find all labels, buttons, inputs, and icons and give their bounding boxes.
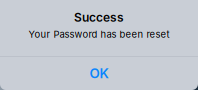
staticText: Your Password has been reset: [28, 28, 169, 40]
button[interactable]: OK: [0, 57, 198, 90]
staticText: Success: [74, 10, 124, 24]
staticText: OK: [89, 65, 108, 81]
